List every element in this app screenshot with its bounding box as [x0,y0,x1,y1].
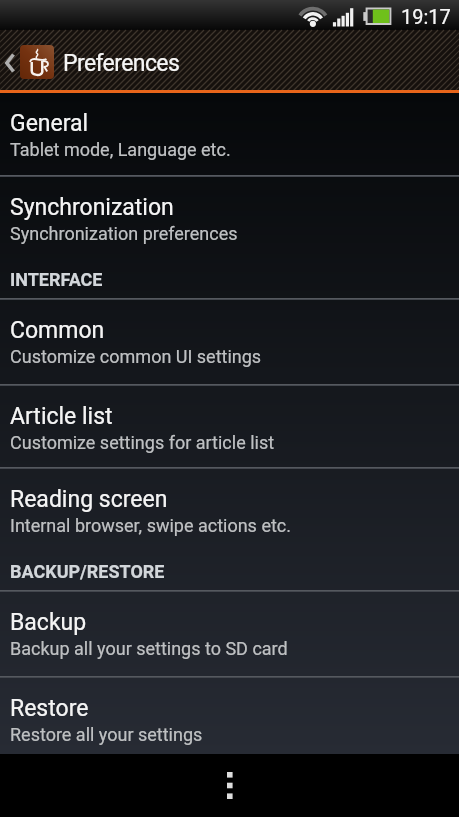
button[interactable]: Article list [0,386,459,467]
button[interactable]: Backup [0,592,459,676]
staticText: Preferences [63,50,180,77]
staticText: INTERFACE [10,269,103,290]
staticText: Backup all your settings to SD card [10,638,288,659]
staticText: Tablet mode, Language etc. [10,139,231,160]
staticText: Article list [10,403,113,430]
button[interactable]: Common [0,300,459,384]
button[interactable]: General [0,93,459,175]
button[interactable]: Restore [0,678,459,754]
button[interactable]: Navigate up [0,30,56,93]
button[interactable]: Synchronization [0,177,459,260]
staticText: BACKUP/RESTORE [10,561,165,582]
staticText: Synchronization [10,194,174,221]
button[interactable]: Reading screen [0,469,459,552]
staticText: Customize settings for article list [10,432,275,453]
staticText: Synchronization preferences [10,223,238,244]
staticText: Common [10,317,105,344]
staticText: Reading screen [10,486,168,513]
staticText: Backup [10,609,87,636]
button[interactable]: More options [200,764,260,808]
staticText: 19:17 [401,5,451,28]
staticText: General [10,110,89,137]
staticText: Customize common UI settings [10,346,262,367]
staticText: Restore [10,695,89,722]
staticText: Restore all your settings [10,724,203,745]
staticText: Internal browser, swipe actions etc. [10,515,291,536]
